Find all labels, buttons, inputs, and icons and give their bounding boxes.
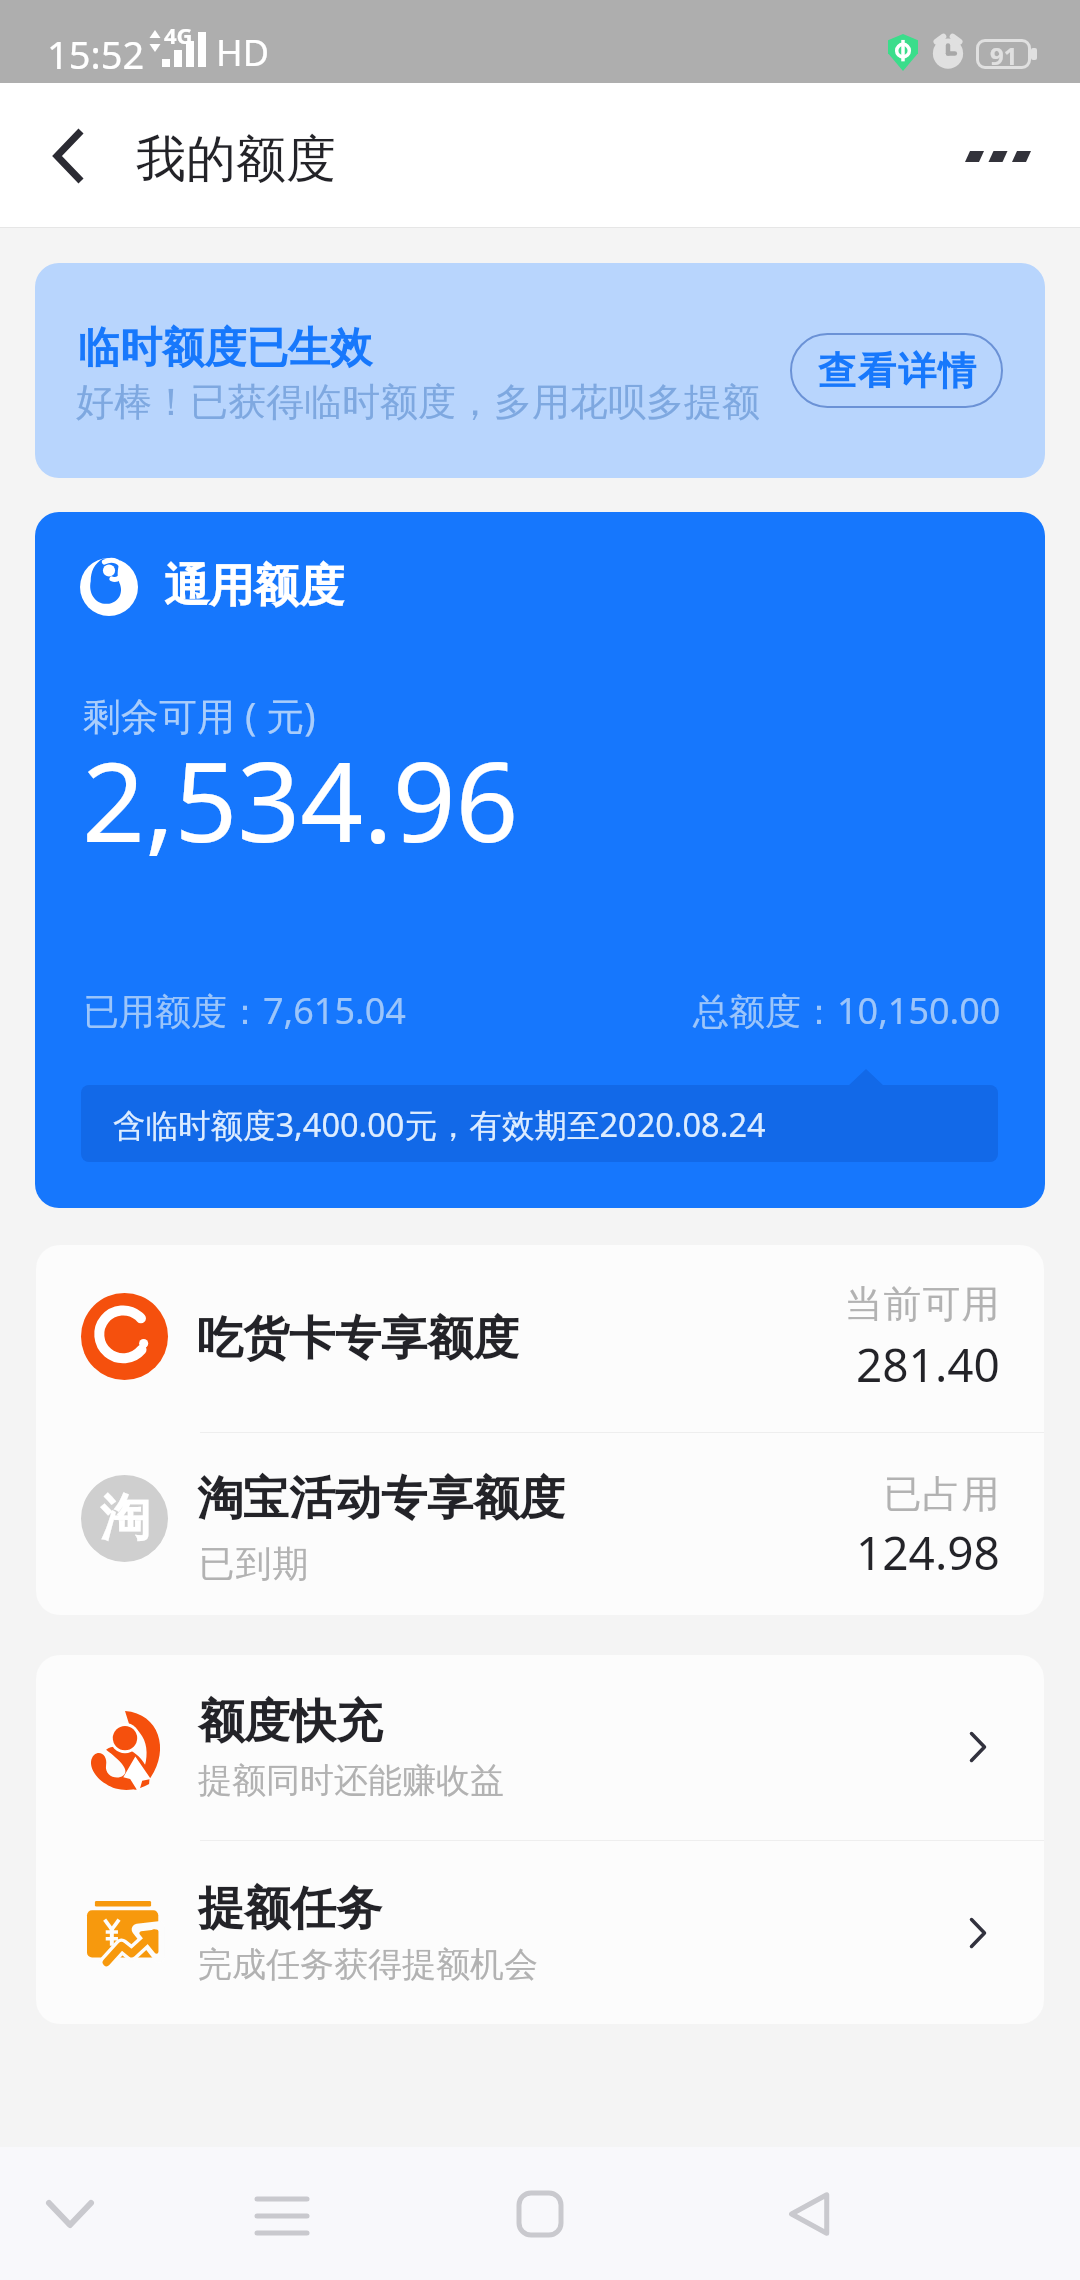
staticText: 已到期 <box>198 1541 309 1586</box>
button[interactable]: Back <box>768 2172 852 2256</box>
button[interactable]: 吃货卡专享额度 <box>36 1245 1044 1432</box>
button[interactable]: More options <box>935 96 1055 216</box>
staticText: HD <box>216 28 269 77</box>
staticText: 124.98 <box>856 1521 1000 1584</box>
button[interactable]: Back <box>14 101 124 211</box>
button[interactable]: Recent apps <box>240 2172 324 2256</box>
staticText: 91 <box>990 39 1018 69</box>
staticText: 额度快充 <box>198 1693 382 1751</box>
staticText: 2,534.96 <box>82 724 519 874</box>
staticText: 通用额度 <box>164 558 344 615</box>
staticText: 总额度：10,150.00 <box>693 986 1001 1035</box>
staticText: 临时额度已生效 <box>78 322 372 375</box>
staticText: 完成任务获得提额机会 <box>198 1943 538 1986</box>
staticText: 已占用 <box>883 1470 1000 1518</box>
staticText: 4G <box>164 20 193 50</box>
staticText: 淘宝活动专享额度 <box>197 1470 565 1528</box>
staticText: 提额任务 <box>198 1880 382 1938</box>
button[interactable]: 提额任务 <box>36 1841 1044 2024</box>
staticText: 含临时额度3,400.00元，有效期至2020.08.24 <box>113 1102 766 1146</box>
staticText: 当前可用 <box>844 1280 1000 1328</box>
staticText: 淘 <box>100 1487 150 1550</box>
staticText: 吃货卡专享额度 <box>197 1310 519 1368</box>
button[interactable]: 淘 <box>36 1433 1044 1615</box>
button[interactable]: 临时额度已生效 <box>35 263 1045 478</box>
button[interactable]: 查看详情 <box>790 333 1003 408</box>
staticText: 查看详情 <box>817 347 977 395</box>
staticText: 好棒！已获得临时额度，多用花呗多提额 <box>76 378 760 426</box>
button[interactable]: Hide keyboard <box>28 2172 112 2256</box>
staticText: 我的额度 <box>136 128 336 191</box>
button[interactable]: 额度快充 <box>36 1655 1044 1840</box>
button[interactable]: Home <box>498 2172 582 2256</box>
staticText: 281.40 <box>856 1333 1000 1396</box>
staticText: 提额同时还能赚收益 <box>198 1759 504 1802</box>
staticText: 已用额度：7,615.04 <box>83 986 406 1035</box>
staticText: 剩余可用 ( 元) <box>83 689 316 741</box>
staticText: 15:52 <box>47 28 145 80</box>
